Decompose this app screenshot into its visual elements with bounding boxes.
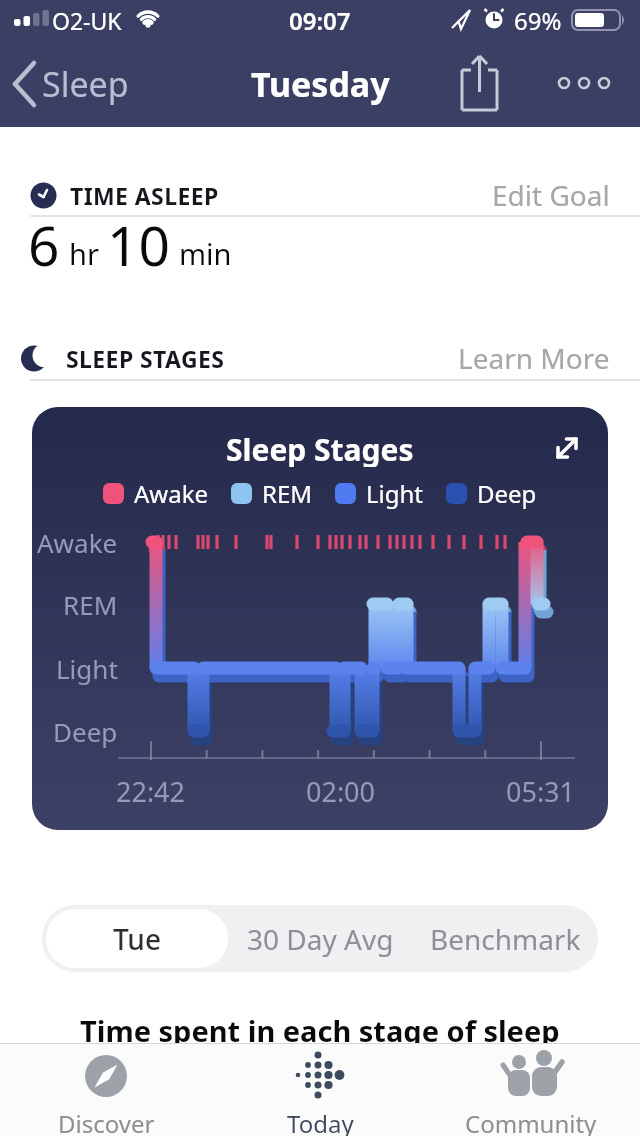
button[interactable]: [450, 45, 510, 120]
button[interactable]: Edit Goal: [492, 176, 610, 214]
staticText: 30 Day Avg: [247, 920, 394, 958]
staticText: 09:07: [289, 4, 351, 36]
staticText: 10: [107, 207, 170, 277]
button[interactable]: Benchmark: [413, 905, 598, 972]
staticText: Light: [366, 477, 424, 510]
staticText: Community: [465, 1107, 597, 1136]
staticText: Learn More: [458, 339, 610, 377]
staticText: min: [179, 234, 232, 273]
staticText: hr: [69, 234, 99, 273]
staticText: 69%: [514, 4, 562, 36]
button[interactable]: 30 Day Avg: [228, 905, 413, 972]
staticText: Edit Goal: [492, 176, 610, 214]
button[interactable]: [550, 60, 620, 106]
staticText: Time spent in each stage of sleep: [80, 1011, 560, 1050]
staticText: REM: [262, 477, 313, 510]
staticText: Discover: [58, 1107, 155, 1136]
staticText: 02:00: [306, 773, 376, 809]
staticText: Light: [56, 651, 118, 686]
button[interactable]: Sleep: [8, 52, 168, 116]
staticText: 6: [28, 207, 60, 277]
staticText: Sleep Stages: [226, 429, 414, 467]
staticText: REM: [63, 587, 118, 622]
button[interactable]: Learn More: [458, 339, 610, 377]
staticText: Tue: [113, 920, 161, 958]
button[interactable]: [548, 427, 598, 477]
staticText: Tuesday: [251, 61, 390, 107]
staticText: Benchmark: [430, 920, 581, 958]
button[interactable]: Tue: [46, 909, 228, 968]
staticText: O2-UK: [52, 5, 122, 36]
staticText: Sleep: [42, 61, 129, 107]
staticText: TIME ASLEEP: [70, 180, 219, 211]
staticText: 05:31: [506, 773, 576, 809]
staticText: Awake: [37, 525, 118, 560]
staticText: Today: [287, 1107, 354, 1136]
staticText: Deep: [53, 714, 118, 749]
staticText: Deep: [477, 477, 537, 510]
button[interactable]: Community: [465, 1045, 597, 1136]
button[interactable]: Discover: [40, 1045, 172, 1136]
staticText: 22:42: [116, 773, 186, 809]
staticText: SLEEP STAGES: [66, 343, 225, 374]
staticText: Awake: [134, 477, 209, 510]
button[interactable]: Today: [254, 1045, 386, 1136]
